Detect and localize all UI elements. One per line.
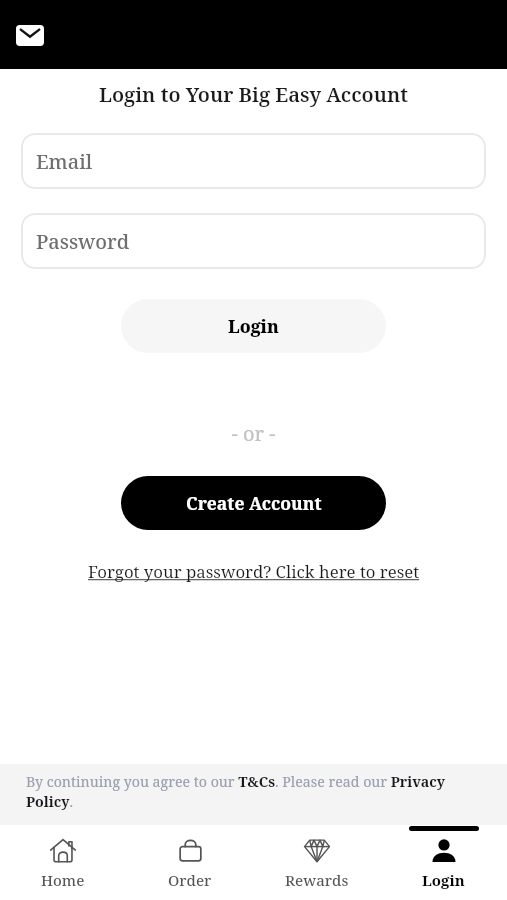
staticText: By continuing you agree to our T&Cs. Ple… [26,772,483,811]
staticText: Login [422,870,465,890]
staticText: Home [41,870,85,890]
staticText: Email [36,148,93,175]
button[interactable]: Login [121,299,386,353]
button[interactable]: Order [126,825,253,900]
button[interactable]: Create Account [121,476,386,530]
button[interactable]: Forgot your password? Click here to rese… [84,558,424,585]
staticText: Forgot your password? Click here to rese… [88,560,420,583]
staticText: - or - [0,420,507,447]
button[interactable]: Home [0,825,126,900]
staticText: Login to Your Big Easy Account [0,80,507,108]
button[interactable]: Rewards [253,825,380,900]
staticText: Order [168,870,212,890]
staticText: Create Account [186,491,322,515]
button[interactable]: Password [21,213,486,269]
staticText: Password [36,228,130,255]
button[interactable]: Login [380,825,507,900]
button[interactable]: Email [21,133,486,189]
button[interactable]: Messages [12,17,48,53]
staticText: Login [228,314,279,338]
staticText: Rewards [285,870,349,890]
